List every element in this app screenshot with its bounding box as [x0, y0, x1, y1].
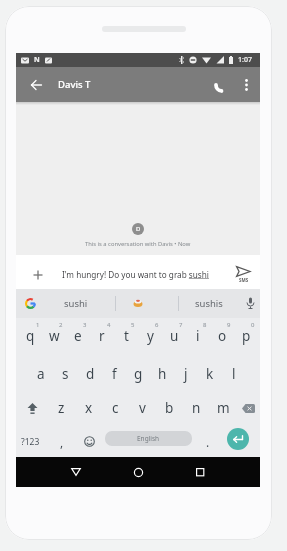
button[interactable]: x: [75, 390, 102, 426]
staticText: a: [37, 365, 45, 383]
button[interactable]: q: [19, 318, 42, 354]
button[interactable]: c: [102, 390, 129, 426]
staticText: n: [192, 399, 201, 417]
button[interactable]: d: [78, 356, 102, 392]
button[interactable]: m: [210, 390, 237, 426]
button[interactable]: y: [138, 318, 162, 354]
staticText: 7: [179, 321, 183, 329]
staticText: o: [218, 327, 227, 345]
button[interactable]: [125, 459, 151, 485]
staticText: i: [196, 327, 200, 345]
staticText: c: [112, 399, 119, 417]
staticText: m: [217, 399, 230, 417]
button[interactable]: p: [234, 318, 258, 354]
button[interactable]: [227, 428, 249, 450]
button[interactable]: l: [222, 356, 246, 392]
button[interactable]: a: [28, 356, 53, 392]
staticText: I'm hungry! Do you want to grab sushi: [62, 269, 209, 280]
staticText: k: [206, 365, 214, 383]
button[interactable]: n: [183, 390, 210, 426]
button[interactable]: [211, 74, 233, 96]
staticText: b: [165, 399, 174, 417]
button[interactable]: [76, 426, 102, 457]
button[interactable]: [26, 75, 46, 95]
staticText: r: [99, 327, 105, 345]
staticText: sushi: [64, 297, 88, 310]
staticText: 1: [36, 321, 40, 329]
button[interactable]: [20, 293, 40, 313]
staticText: SMS: [239, 277, 249, 283]
button[interactable]: sushi: [49, 289, 103, 318]
button[interactable]: [16, 390, 48, 426]
staticText: 3: [83, 321, 87, 329]
staticText: English: [137, 434, 160, 443]
staticText: f: [112, 365, 117, 383]
staticText: 1:07: [238, 55, 252, 65]
button[interactable]: r: [90, 318, 114, 354]
button[interactable]: k: [198, 356, 222, 392]
staticText: 6: [155, 321, 159, 329]
staticText: u: [170, 327, 179, 345]
staticText: 9: [227, 321, 231, 329]
button[interactable]: [239, 78, 253, 92]
button[interactable]: o: [210, 318, 234, 354]
staticText: D: [136, 225, 141, 233]
button[interactable]: j: [174, 356, 198, 392]
staticText: e: [74, 327, 82, 345]
button[interactable]: [124, 289, 152, 318]
staticText: t: [124, 327, 129, 345]
button[interactable]: ,: [50, 426, 74, 457]
button[interactable]: u: [162, 318, 186, 354]
staticText: 8: [203, 321, 207, 329]
button[interactable]: ?123: [16, 426, 45, 457]
button[interactable]: h: [150, 356, 174, 392]
staticText: 5: [131, 321, 135, 329]
staticText: w: [49, 327, 60, 345]
button[interactable]: English: [105, 431, 192, 446]
button[interactable]: s: [53, 356, 78, 392]
staticText: p: [242, 327, 251, 345]
staticText: 4: [107, 321, 111, 329]
staticText: ?123: [21, 436, 40, 448]
button[interactable]: [187, 459, 213, 485]
staticText: s: [62, 365, 69, 383]
staticText: q: [26, 327, 35, 345]
button[interactable]: I'm hungry! Do you want to grab sushi: [16, 255, 260, 289]
staticText: x: [85, 399, 93, 417]
staticText: d: [86, 365, 95, 383]
staticText: This is a conversation with Davis • Now: [85, 240, 191, 248]
staticText: sushis: [195, 297, 223, 310]
button[interactable]: [237, 390, 260, 426]
staticText: ,: [60, 434, 64, 450]
staticText: Davis T: [58, 78, 91, 91]
button[interactable]: v: [129, 390, 156, 426]
staticText: h: [158, 365, 167, 383]
button[interactable]: e: [66, 318, 90, 354]
button[interactable]: sushis: [179, 289, 239, 318]
button[interactable]: i: [186, 318, 210, 354]
staticText: l: [232, 365, 236, 383]
button[interactable]: .: [196, 426, 220, 457]
staticText: g: [134, 365, 143, 383]
button[interactable]: [240, 293, 260, 313]
button[interactable]: b: [156, 390, 183, 426]
button[interactable]: w: [42, 318, 66, 354]
button[interactable]: SMS: [236, 266, 251, 283]
staticText: j: [184, 365, 188, 383]
staticText: y: [147, 327, 154, 345]
button[interactable]: t: [114, 318, 138, 354]
staticText: 2: [59, 321, 63, 329]
button[interactable]: [63, 459, 89, 485]
staticText: 0: [251, 321, 255, 329]
staticText: v: [139, 399, 146, 417]
staticText: N: [34, 55, 40, 65]
button[interactable]: g: [126, 356, 150, 392]
button[interactable]: f: [102, 356, 126, 392]
staticText: .: [206, 434, 210, 450]
button[interactable]: z: [48, 390, 75, 426]
staticText: z: [58, 399, 65, 417]
